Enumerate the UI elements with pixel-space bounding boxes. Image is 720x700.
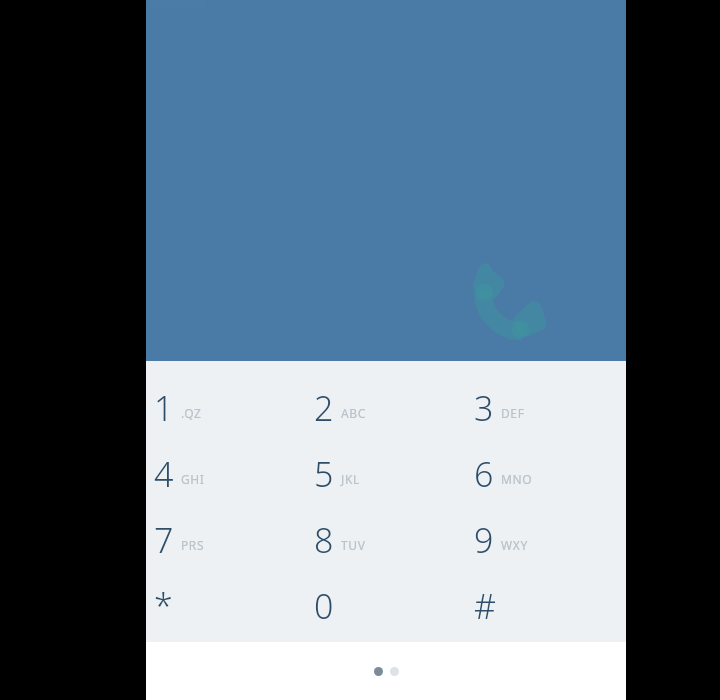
staticText: 8 bbox=[314, 517, 334, 563]
staticText: 5 bbox=[314, 451, 334, 497]
staticText: 9 bbox=[474, 517, 494, 563]
button[interactable]: 9 bbox=[466, 507, 626, 573]
staticText: WXY bbox=[501, 537, 528, 553]
staticText: 3 bbox=[474, 385, 494, 431]
staticText: DEF bbox=[501, 405, 525, 421]
staticText: 2 bbox=[314, 385, 334, 431]
button[interactable]: 8 bbox=[306, 507, 466, 573]
staticText: PRS bbox=[181, 537, 205, 553]
button[interactable]: 7 bbox=[146, 507, 306, 573]
button[interactable]: * bbox=[146, 573, 306, 639]
button[interactable]: # bbox=[466, 573, 626, 639]
other: Phone bbox=[462, 255, 558, 351]
button[interactable]: 2 bbox=[306, 375, 466, 441]
button[interactable]: 5 bbox=[306, 441, 466, 507]
button[interactable]: 6 bbox=[466, 441, 626, 507]
staticText: * bbox=[154, 583, 173, 629]
staticText: 6 bbox=[474, 451, 494, 497]
staticText: TUV bbox=[341, 537, 366, 553]
staticText: 1 bbox=[154, 385, 174, 431]
button[interactable]: 0 bbox=[306, 573, 466, 639]
button[interactable]: 3 bbox=[466, 375, 626, 441]
staticText: 4 bbox=[154, 451, 174, 497]
button[interactable]: 1 bbox=[146, 375, 306, 441]
staticText: JKL bbox=[341, 471, 360, 487]
staticText: ABC bbox=[341, 405, 366, 421]
staticText: .QZ bbox=[181, 405, 202, 421]
staticText: 0 bbox=[314, 583, 334, 629]
staticText: # bbox=[474, 583, 496, 629]
staticText: 7 bbox=[154, 517, 174, 563]
staticText: GHI bbox=[181, 471, 205, 487]
staticText: MNO bbox=[501, 471, 533, 487]
button[interactable]: 4 bbox=[146, 441, 306, 507]
